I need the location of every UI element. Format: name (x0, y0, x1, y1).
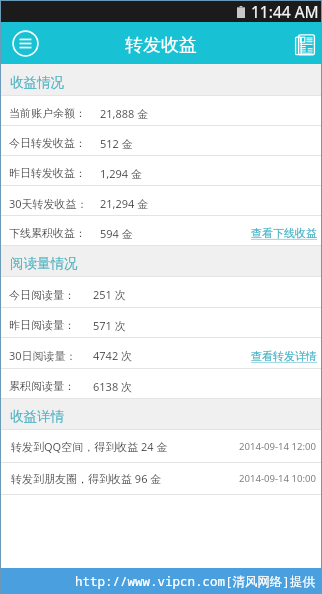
staticText: 今日转发收益： (9, 136, 86, 150)
staticText: 收益详情 (10, 408, 64, 425)
staticText: 下线累积收益： (9, 226, 86, 240)
staticText: 1,294 金 (100, 166, 142, 181)
staticText: 30日阅读量： (9, 348, 77, 363)
staticText: 251 次 (93, 287, 126, 302)
staticText: 转发到朋友圈，得到收益 96 金 (11, 471, 162, 486)
staticText: http://www.vipcn.com[清风网络]提供 (75, 573, 316, 590)
staticText: 2014-09-14 12:00 (239, 440, 317, 453)
button[interactable]: 今日阅读量： (1, 277, 321, 308)
staticText: 21,294 金 (100, 196, 149, 211)
staticText: 转发收益 (125, 34, 197, 57)
button[interactable]: 当前账户余额： (1, 96, 321, 126)
staticText: 11:44 AM (251, 1, 319, 22)
staticText: 594 金 (100, 226, 133, 241)
staticText: 2014-09-14 10:00 (239, 472, 317, 485)
staticText: 查看下线收益 (251, 226, 317, 240)
staticText: 当前账户余额： (9, 106, 86, 120)
staticText: 512 金 (100, 136, 133, 151)
staticText: 昨日阅读量： (9, 318, 75, 332)
button[interactable]: 转发到QQ空间，得到收益 24 金 (1, 430, 321, 463)
staticText: 查看转发详情 (251, 349, 317, 363)
button[interactable]: 30日阅读量： (1, 338, 321, 369)
staticText: 今日阅读量： (9, 288, 75, 302)
button[interactable]: Menu (7, 25, 43, 61)
button[interactable]: 转发到朋友圈，得到收益 96 金 (1, 463, 321, 495)
button[interactable]: 今日转发收益： (1, 126, 321, 156)
staticText: 收益情况 (10, 74, 64, 91)
button[interactable]: News (285, 28, 315, 58)
button[interactable]: 昨日转发收益： (1, 156, 321, 186)
staticText: 转发到QQ空间，得到收益 24 金 (11, 439, 168, 454)
staticText: 21,888 金 (100, 106, 149, 121)
button[interactable]: 累积阅读量： (1, 369, 321, 399)
staticText: 30天转发收益： (9, 196, 88, 211)
staticText: 4742 次 (93, 348, 133, 363)
button[interactable]: 30天转发收益： (1, 186, 321, 216)
staticText: 571 次 (93, 318, 126, 333)
button[interactable]: 下线累积收益： (1, 216, 321, 246)
staticText: 阅读量情况 (10, 255, 78, 272)
staticText: 6138 次 (93, 379, 133, 394)
button[interactable]: 昨日阅读量： (1, 308, 321, 338)
staticText: 昨日转发收益： (9, 166, 86, 180)
staticText: 累积阅读量： (9, 379, 75, 393)
